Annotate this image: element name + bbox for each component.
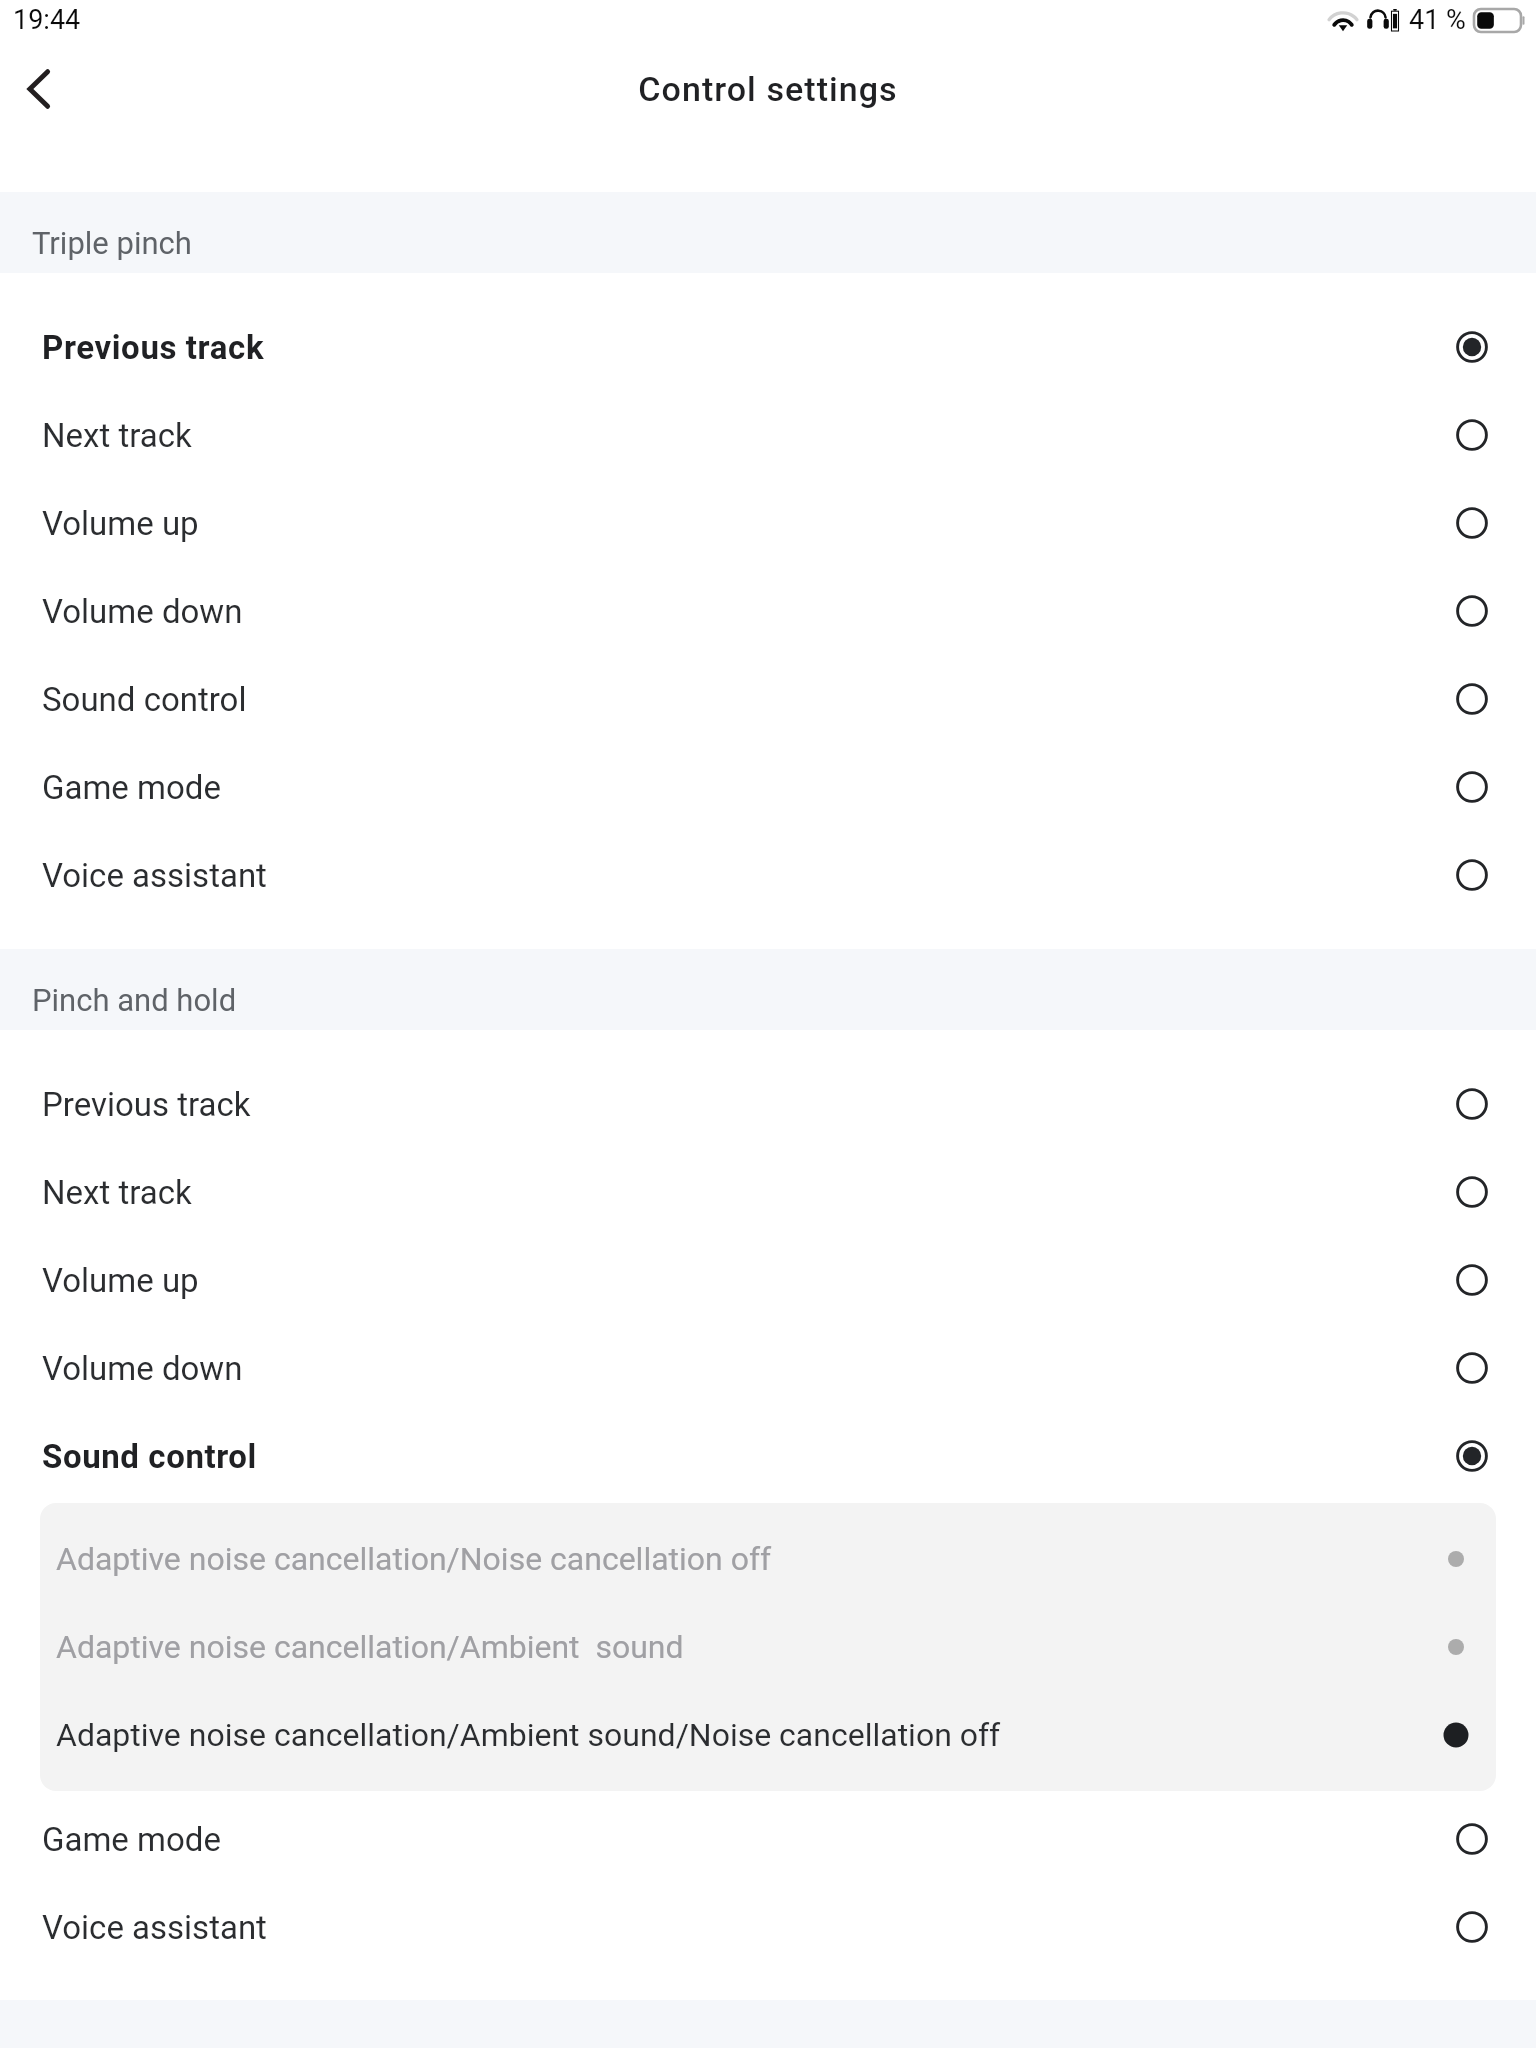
button[interactable]: Adaptive noise cancellation/Noise cancel… (40, 1515, 1496, 1603)
staticText: Previous track (42, 1085, 1456, 1124)
staticText: 19:44 (13, 4, 81, 36)
button[interactable]: Volume down (0, 1324, 1536, 1412)
button[interactable]: Adaptive noise cancellation/Ambient soun… (40, 1603, 1496, 1691)
button[interactable]: Voice assistant (0, 831, 1536, 919)
button[interactable]: Volume up (0, 1236, 1536, 1324)
staticText: Adaptive noise cancellation/Ambient soun… (56, 1716, 1440, 1754)
button[interactable]: Back (0, 45, 88, 133)
staticText: Sound control (42, 1437, 1456, 1476)
button[interactable]: Game mode (0, 1795, 1536, 1883)
staticText: Triple pinch (32, 225, 192, 261)
staticText: Adaptive noise cancellation/Ambient soun… (56, 1628, 1440, 1666)
button[interactable]: Game mode (0, 743, 1536, 831)
button[interactable]: Volume down (0, 567, 1536, 655)
staticText: Previous track (42, 328, 1456, 367)
staticText: 41 % (1409, 4, 1466, 36)
staticText: Pinch and hold (32, 982, 237, 1018)
button[interactable]: Volume up (0, 479, 1536, 567)
button[interactable]: Adaptive noise cancellation/Ambient soun… (40, 1691, 1496, 1779)
staticText: Volume down (42, 1349, 1456, 1388)
staticText: Adaptive noise cancellation/Noise cancel… (56, 1540, 1440, 1578)
staticText: Voice assistant (42, 856, 1456, 895)
staticText: Game mode (42, 768, 1456, 807)
staticText: Sound control (42, 680, 1456, 719)
staticText: Volume up (42, 1261, 1456, 1300)
button[interactable]: Sound control (0, 655, 1536, 743)
staticText: Control settings (638, 69, 898, 109)
button[interactable]: Sound control (0, 1412, 1536, 1500)
staticText: Next track (42, 416, 1456, 455)
staticText: Volume down (42, 592, 1456, 631)
button[interactable]: Next track (0, 391, 1536, 479)
button[interactable]: Voice assistant (0, 1883, 1536, 1971)
staticText: Voice assistant (42, 1908, 1456, 1947)
button[interactable]: Previous track (0, 1060, 1536, 1148)
staticText: Next track (42, 1173, 1456, 1212)
button[interactable]: Next track (0, 1148, 1536, 1236)
staticText: Game mode (42, 1820, 1456, 1859)
staticText: Volume up (42, 504, 1456, 543)
button[interactable]: Previous track (0, 303, 1536, 391)
